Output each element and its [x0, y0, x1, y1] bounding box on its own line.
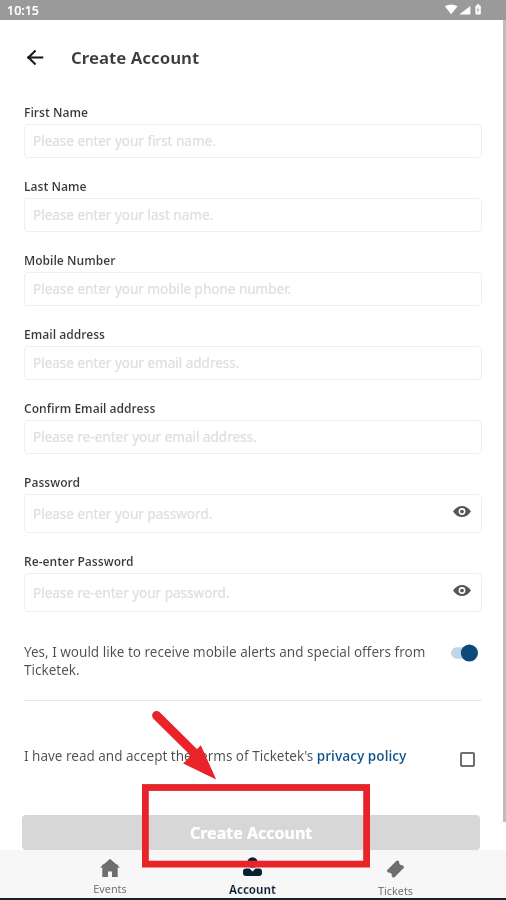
- staticText: Please enter your last name.: [33, 206, 214, 224]
- button[interactable]: Please enter your first name.: [24, 124, 482, 158]
- staticText: Please re-enter your email address.: [33, 428, 257, 446]
- button[interactable]: Show password: [453, 585, 471, 596]
- staticText: Email address: [24, 326, 106, 342]
- staticText: Create Account: [190, 822, 313, 844]
- staticText: Events: [93, 881, 127, 896]
- staticText: Create Account: [71, 46, 200, 69]
- staticText: Confirm Email address: [24, 400, 156, 416]
- staticText: I have read and accept the terms of Tick…: [24, 747, 460, 765]
- button[interactable]: Back: [21, 43, 50, 72]
- button[interactable]: Please re-enter your password.: [24, 573, 482, 612]
- button[interactable]: Please enter your password.: [24, 494, 482, 533]
- staticText: Yes, I would like to receive mobile aler…: [24, 643, 430, 679]
- button[interactable]: Events: [39, 850, 181, 898]
- button[interactable]: Tickets: [324, 850, 467, 898]
- button[interactable]: Please enter your email address.: [24, 346, 482, 380]
- button[interactable]: Show password: [453, 506, 471, 517]
- button[interactable]: Yes, I would like to receive mobile aler…: [24, 643, 482, 679]
- staticText: Please enter your mobile phone number.: [33, 280, 292, 298]
- button[interactable]: I have read and accept the terms of Tick…: [24, 745, 482, 767]
- button[interactable]: Please enter your last name.: [24, 198, 482, 232]
- staticText: First Name: [24, 104, 89, 120]
- staticText: Last Name: [24, 178, 87, 194]
- staticText: Password: [24, 474, 81, 490]
- staticText: Please enter your first name.: [33, 132, 216, 150]
- staticText: Please enter your password.: [33, 505, 213, 523]
- staticText: Please re-enter your password.: [33, 584, 230, 602]
- staticText: Re-enter Password: [24, 553, 134, 569]
- staticText: Please enter your email address.: [33, 354, 240, 372]
- button[interactable]: Receive offers: [451, 644, 478, 662]
- staticText: Tickets: [378, 883, 413, 898]
- staticText: Account: [229, 882, 276, 898]
- button[interactable]: Please enter your mobile phone number.: [24, 272, 482, 306]
- staticText: 10:15: [7, 2, 40, 19]
- button[interactable]: Please re-enter your email address.: [24, 420, 482, 454]
- staticText: Mobile Number: [24, 252, 116, 268]
- button[interactable]: Account: [181, 850, 324, 898]
- button[interactable]: Create Account: [22, 815, 480, 850]
